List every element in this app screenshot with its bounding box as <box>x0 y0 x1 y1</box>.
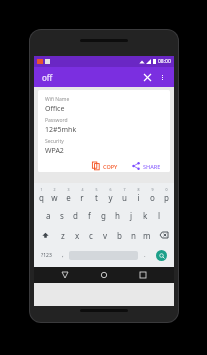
button[interactable]: Backspace <box>154 225 173 245</box>
button[interactable]: . <box>139 246 150 264</box>
button[interactable]: 0 <box>159 185 173 205</box>
staticText: 6 <box>109 187 112 192</box>
staticText: n <box>131 230 136 241</box>
button[interactable]: , <box>57 246 68 264</box>
button[interactable]: f <box>82 205 96 225</box>
staticText: 12#5mhk <box>45 125 77 135</box>
staticText: Wifi Name <box>45 96 70 103</box>
button[interactable]: Wifi Name <box>38 90 170 172</box>
staticText: p <box>164 192 169 203</box>
button[interactable]: 6 <box>103 185 117 205</box>
button[interactable]: c <box>84 225 98 245</box>
button[interactable]: m <box>140 225 154 245</box>
staticText: 08:00 <box>158 58 171 65</box>
staticText: i <box>137 192 140 203</box>
staticText: e <box>66 192 71 203</box>
button[interactable]: z <box>55 225 70 245</box>
staticText: WPA2 <box>45 146 64 156</box>
button[interactable]: 2 <box>48 185 61 205</box>
staticText: r <box>80 192 84 203</box>
button[interactable]: 8 <box>131 185 145 205</box>
staticText: . <box>144 251 146 259</box>
staticText: SHARE <box>143 163 161 170</box>
staticText: 1 <box>40 187 43 192</box>
button[interactable]: g <box>96 205 110 225</box>
button[interactable]: 3 <box>61 185 75 205</box>
button[interactable]: k <box>138 205 152 225</box>
staticText: v <box>103 230 108 241</box>
button[interactable]: Recent apps <box>135 267 151 283</box>
staticText: 3 <box>67 187 70 192</box>
staticText: l <box>158 210 161 221</box>
staticText: q <box>39 192 44 203</box>
staticText: COPY <box>103 163 118 170</box>
button[interactable]: Clear <box>139 69 155 85</box>
staticText: y <box>108 192 113 203</box>
staticText: Security <box>45 138 64 145</box>
button[interactable]: 9 <box>145 185 159 205</box>
staticText: s <box>60 210 64 221</box>
staticText: 5 <box>95 187 98 192</box>
staticText: , <box>62 251 64 259</box>
staticText: a <box>46 210 51 221</box>
button[interactable]: n <box>126 225 140 245</box>
staticText: 2 <box>53 187 56 192</box>
button[interactable]: More options <box>155 70 169 84</box>
staticText: Office <box>45 104 65 114</box>
staticText: k <box>143 210 148 221</box>
staticText: z <box>61 230 65 241</box>
staticText: w <box>51 192 58 203</box>
button[interactable]: 7 <box>117 185 131 205</box>
button[interactable]: s <box>55 205 68 225</box>
button[interactable]: ?123 <box>35 246 57 264</box>
staticText: g <box>101 210 106 221</box>
button[interactable]: h <box>110 205 124 225</box>
staticText: d <box>73 210 78 221</box>
staticText: Password <box>45 117 68 124</box>
button[interactable]: a <box>42 205 55 225</box>
staticText: 4 <box>81 187 84 192</box>
button[interactable]: x <box>70 225 84 245</box>
button[interactable]: SHARE <box>129 160 164 172</box>
staticText: ?123 <box>41 252 52 259</box>
button[interactable]: Shift <box>35 225 55 245</box>
staticText: c <box>89 230 93 241</box>
button[interactable]: COPY <box>89 160 121 172</box>
button[interactable]: b <box>112 225 126 245</box>
staticText: h <box>115 210 120 221</box>
button[interactable]: 5 <box>89 185 103 205</box>
staticText: b <box>117 230 122 241</box>
staticText: f <box>88 210 91 221</box>
staticText: t <box>95 192 98 203</box>
button[interactable]: Search <box>156 250 167 261</box>
staticText: m <box>143 230 151 241</box>
staticText: 0 <box>165 187 168 192</box>
button[interactable]: Back <box>57 267 73 283</box>
button[interactable]: Home <box>96 267 112 283</box>
staticText: 7 <box>123 187 126 192</box>
staticText: u <box>122 192 127 203</box>
button[interactable]: v <box>98 225 112 245</box>
button[interactable]: j <box>124 205 138 225</box>
button[interactable]: 4 <box>75 185 89 205</box>
button[interactable]: 1 <box>35 185 48 205</box>
staticText: 8 <box>137 187 140 192</box>
staticText: x <box>75 230 80 241</box>
staticText: j <box>130 210 133 221</box>
staticText: 9 <box>151 187 154 192</box>
staticText: off <box>42 72 53 83</box>
button[interactable]: l <box>152 205 166 225</box>
staticText: o <box>150 192 155 203</box>
button[interactable]: d <box>68 205 82 225</box>
